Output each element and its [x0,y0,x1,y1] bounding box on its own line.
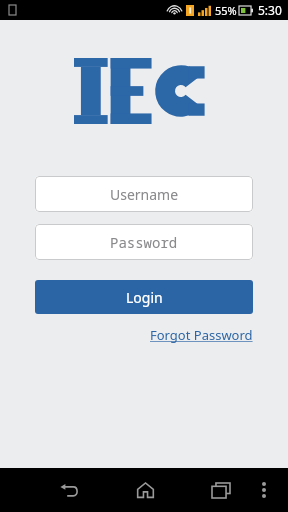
button[interactable]: Password [35,224,253,260]
staticText: 5:30 [258,2,282,18]
staticText: Username [110,185,179,204]
button[interactable]: Back [52,473,86,507]
button[interactable]: Login [35,280,253,314]
staticText: Password [110,233,178,252]
button[interactable]: Recent apps [204,473,238,507]
button[interactable]: More options [252,478,276,502]
button[interactable]: Username [35,176,253,212]
button[interactable]: Home [128,473,162,507]
staticText: Login [126,288,163,307]
staticText: Forgot Password [150,326,253,344]
staticText: 55% [215,3,237,18]
button[interactable]: Forgot Password [150,326,253,344]
